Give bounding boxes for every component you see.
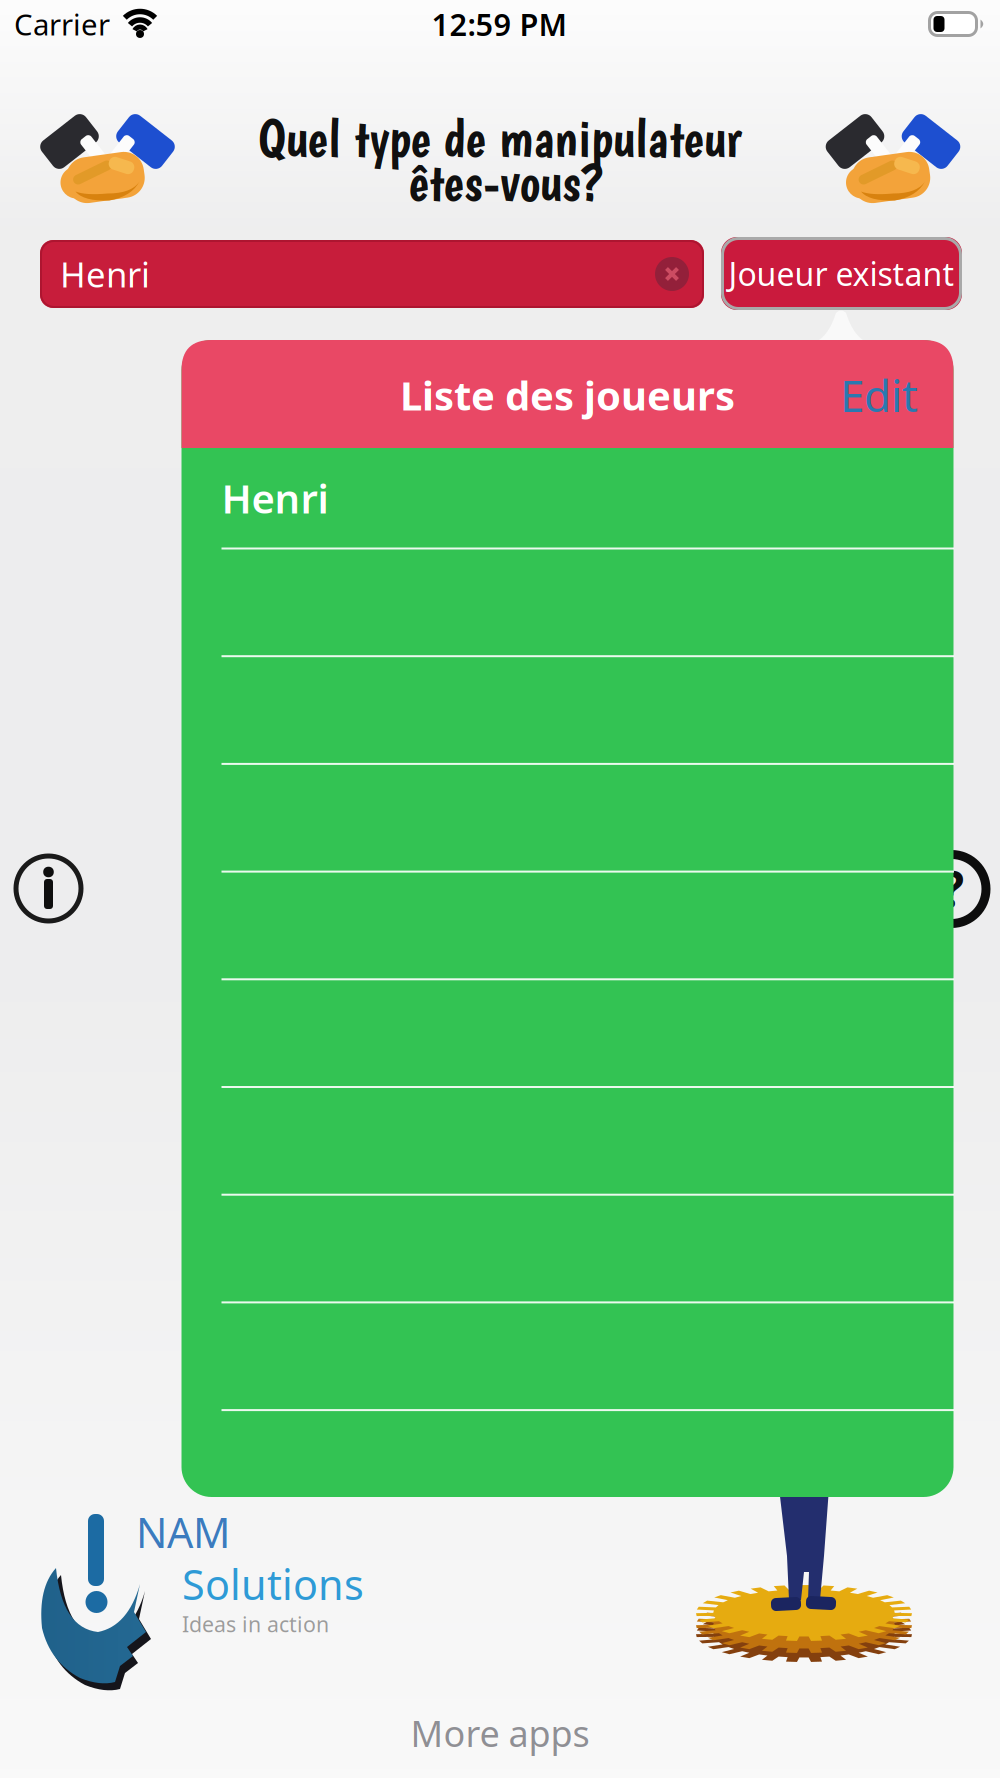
staticText: Edit [840,366,918,424]
button[interactable]: Henri [221,448,953,548]
staticText: Carrier [14,4,110,43]
staticText: More apps [410,1709,589,1757]
button[interactable]: Info [13,853,83,923]
staticText: Liste des joueurs [400,368,735,421]
staticText: Henri [60,251,150,297]
button[interactable]: Joueur existant [721,237,962,310]
staticText: Henri [221,471,328,524]
button[interactable]: Help [912,850,990,928]
staticText: NAM [136,1505,230,1559]
staticText: Ideas in action [182,1610,329,1638]
staticText: Solutions [182,1557,364,1611]
staticText: ? [940,855,964,921]
staticText: 12:59 PM [431,4,566,44]
button[interactable]: More apps [410,1709,589,1757]
button[interactable]: Clear text [655,257,689,291]
button[interactable]: Edit [840,366,918,424]
staticText: Quel type de manipulateur [258,106,742,170]
staticText: êtes-vous? [409,150,603,214]
staticText: Joueur existant [728,252,954,295]
